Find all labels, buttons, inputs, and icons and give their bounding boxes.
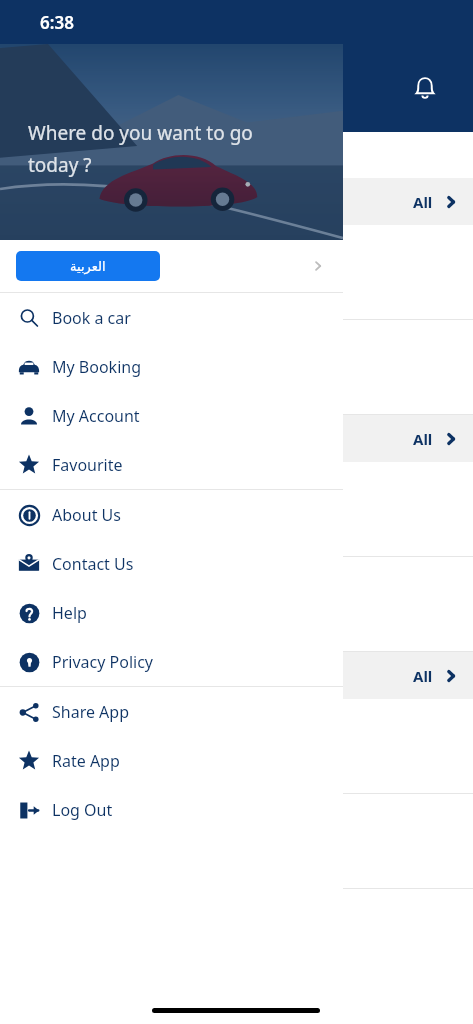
button[interactable]: Rate App xyxy=(0,736,343,785)
staticText: All xyxy=(413,666,433,686)
staticText: Book a car xyxy=(52,307,131,329)
button[interactable]: All xyxy=(0,178,473,225)
staticText: My Booking xyxy=(52,356,141,378)
staticText: Contact Us xyxy=(52,553,134,575)
staticText: 6:38 xyxy=(40,11,74,34)
button[interactable]: Book a car xyxy=(0,293,343,342)
button[interactable]: العربية xyxy=(16,251,160,281)
button[interactable]: Favourite xyxy=(0,440,343,489)
staticText: العربية xyxy=(70,259,106,274)
staticText: All xyxy=(413,192,433,212)
staticText: Privacy Policy xyxy=(52,651,153,673)
button[interactable]: العربية xyxy=(0,240,343,292)
staticText: Log Out xyxy=(52,799,113,821)
button[interactable]: Share App xyxy=(0,687,343,736)
button[interactable]: My Booking xyxy=(0,342,343,391)
button[interactable]: Notifications xyxy=(405,68,445,108)
staticText: today ? xyxy=(28,152,92,178)
staticText: Where do you want to go xyxy=(28,120,253,146)
button[interactable]: Log Out xyxy=(0,785,343,834)
button[interactable]: Privacy Policy xyxy=(0,637,343,686)
staticText: Share App xyxy=(52,701,130,723)
staticText: All xyxy=(413,429,433,449)
staticText: All xyxy=(42,146,61,165)
staticText: About Us xyxy=(52,504,121,526)
staticText: Help xyxy=(52,602,87,624)
staticText: My Account xyxy=(52,405,140,427)
button[interactable]: All xyxy=(0,415,473,462)
button[interactable]: All xyxy=(8,132,93,178)
button[interactable]: Contact Us xyxy=(0,539,343,588)
button[interactable]: Help xyxy=(0,588,343,637)
staticText: Rate App xyxy=(52,750,120,772)
button[interactable]: All xyxy=(0,652,473,699)
button[interactable]: My Account xyxy=(0,391,343,440)
staticText: Favourite xyxy=(52,454,123,476)
button[interactable]: About Us xyxy=(0,490,343,539)
